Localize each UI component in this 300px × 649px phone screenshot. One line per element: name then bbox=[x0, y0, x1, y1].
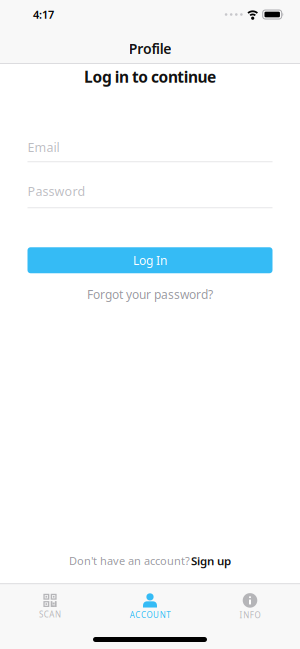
button[interactable]: INFO bbox=[200, 593, 300, 621]
staticText: SCAN bbox=[39, 609, 61, 620]
staticText: Don't have an account? bbox=[69, 553, 190, 568]
button[interactable]: Forgot your password? bbox=[27, 286, 272, 303]
staticText: Password bbox=[27, 183, 85, 200]
staticText: 4:17 bbox=[33, 7, 54, 22]
staticText: Log In bbox=[133, 252, 167, 268]
staticText: Sign up bbox=[191, 553, 231, 568]
staticText: Log in to continue bbox=[84, 66, 216, 87]
staticText: Profile bbox=[129, 39, 171, 58]
button[interactable]: Don't have an account? bbox=[69, 553, 231, 568]
button[interactable]: Email bbox=[27, 139, 272, 162]
button[interactable]: Password bbox=[27, 183, 272, 208]
staticText: ACCOUNT bbox=[130, 609, 170, 620]
staticText: Forgot your password? bbox=[87, 286, 213, 303]
button[interactable]: Log In bbox=[27, 247, 272, 273]
button[interactable]: ACCOUNT bbox=[100, 593, 200, 620]
staticText: Email bbox=[27, 139, 59, 156]
staticText: INFO bbox=[240, 610, 260, 621]
button[interactable]: SCAN bbox=[0, 594, 100, 620]
